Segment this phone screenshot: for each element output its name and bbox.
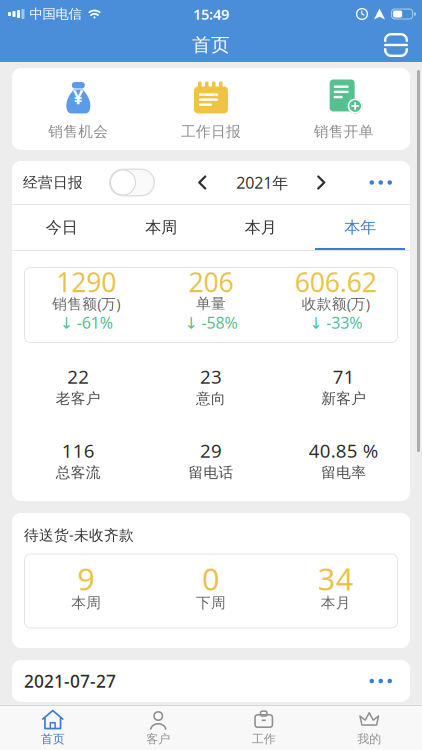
staticText: 工作日报: [181, 122, 241, 140]
staticText: 116: [62, 438, 95, 463]
button[interactable]: 工作: [211, 706, 316, 750]
button[interactable]: 销售开单: [277, 77, 410, 140]
button[interactable]: 今日: [12, 205, 111, 250]
staticText: 0: [202, 558, 220, 599]
staticText: 15:49: [193, 4, 229, 24]
staticText: 9: [77, 558, 95, 599]
staticText: 2021年: [236, 172, 288, 193]
staticText: 本周: [71, 594, 101, 612]
staticText: 意向: [196, 389, 226, 407]
staticText: 老客户: [56, 389, 101, 407]
staticText: 1290: [56, 264, 116, 300]
staticText: 首页: [41, 731, 65, 746]
button[interactable]: 我的: [316, 706, 422, 750]
staticText: 22: [67, 364, 89, 389]
staticText: 34: [318, 558, 354, 599]
button[interactable]: 扫一扫: [384, 28, 422, 62]
button[interactable]: 工作日报: [145, 77, 277, 140]
staticText: 待送货-未收齐款: [24, 525, 134, 544]
staticText: 2021-07-27: [24, 669, 116, 692]
staticText: 我的: [357, 731, 381, 746]
staticText: 经营日报: [23, 173, 83, 191]
staticText: 606.62: [295, 264, 377, 300]
button[interactable]: 客户: [105, 706, 211, 750]
button[interactable]: ¥: [12, 77, 145, 140]
staticText: 新客户: [321, 389, 366, 407]
button[interactable]: 经营日报开关: [109, 168, 155, 196]
staticText: 客户: [146, 731, 170, 746]
staticText: ↓ -33%: [309, 312, 362, 333]
staticText: 销售机会: [48, 122, 108, 140]
staticText: 工作: [252, 731, 276, 746]
button[interactable]: 更多: [369, 172, 392, 193]
staticText: 留电话: [188, 463, 233, 481]
staticText: 单量: [196, 294, 226, 312]
button[interactable]: 下一年: [310, 168, 333, 196]
staticText: 下周: [196, 594, 226, 612]
button[interactable]: 首页: [0, 706, 105, 750]
button[interactable]: 2021-07-27 详情: [12, 660, 410, 702]
button[interactable]: 本周: [111, 205, 211, 250]
staticText: 本月: [321, 594, 351, 612]
staticText: 本周: [145, 218, 177, 237]
staticText: 29: [200, 438, 222, 463]
button[interactable]: 本年: [310, 205, 410, 250]
staticText: 首页: [192, 33, 230, 56]
staticText: ¥: [73, 85, 84, 109]
staticText: 销售额(万): [52, 294, 120, 313]
staticText: 今日: [46, 218, 78, 237]
staticText: 206: [188, 264, 233, 300]
staticText: ↓ -58%: [184, 312, 237, 333]
staticText: 销售开单: [314, 122, 374, 140]
staticText: 收款额(万): [302, 294, 370, 313]
staticText: 71: [333, 364, 355, 389]
staticText: 留电率: [321, 463, 366, 481]
staticText: 40.85 %: [309, 438, 379, 463]
button[interactable]: 上一年: [191, 168, 214, 196]
staticText: ↓ -61%: [60, 312, 113, 333]
staticText: 本年: [344, 218, 376, 237]
staticText: 本月: [245, 218, 277, 237]
button[interactable]: 本月: [211, 205, 310, 250]
staticText: 总客流: [56, 463, 101, 481]
staticText: 中国电信: [29, 6, 81, 22]
staticText: 23: [200, 364, 222, 389]
